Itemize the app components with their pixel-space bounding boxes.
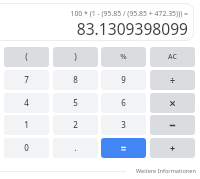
button[interactable]: 2 <box>53 115 98 135</box>
staticText: % <box>120 51 127 61</box>
staticText: 0 <box>24 142 29 153</box>
button[interactable]: 4 <box>4 93 49 113</box>
button[interactable]: 7 <box>4 70 49 90</box>
button[interactable]: 1 <box>4 115 49 135</box>
staticText: AC <box>168 52 177 61</box>
button[interactable]: Multiply <box>150 93 195 113</box>
staticText: 3 <box>121 119 126 130</box>
button[interactable]: 6 <box>101 93 146 113</box>
staticText: 5 <box>73 97 78 108</box>
button[interactable]: Minus <box>150 115 195 135</box>
staticText: ) <box>74 51 77 62</box>
staticText: . <box>74 142 77 153</box>
button[interactable]: 5 <box>53 93 98 113</box>
button[interactable]: AC <box>150 47 195 67</box>
button[interactable]: 3 <box>101 115 146 135</box>
staticText: 9 <box>121 74 126 85</box>
button[interactable]: Close parenthesis <box>53 47 98 67</box>
staticText: 7 <box>24 74 29 85</box>
staticText: Weitere Informationen <box>136 167 196 175</box>
staticText: 6 <box>121 97 126 108</box>
staticText: ( <box>25 51 28 62</box>
staticText: 2 <box>73 119 78 130</box>
button[interactable]: 0 <box>4 138 49 158</box>
button[interactable]: Equals <box>101 138 146 158</box>
button[interactable]: 8 <box>53 70 98 90</box>
staticText: 8 <box>73 74 78 85</box>
staticText: 100 * (1 - (95.85 / (95.85 + 472.35))) = <box>70 9 188 18</box>
button[interactable]: Weitere Informationen <box>136 167 196 175</box>
staticText: 83.1309398099 <box>76 18 188 39</box>
button[interactable]: Decimal point <box>53 138 98 158</box>
button[interactable]: Plus <box>150 138 195 158</box>
staticText: 4 <box>24 97 29 108</box>
button[interactable]: Divide <box>150 70 195 90</box>
button[interactable]: 9 <box>101 70 146 90</box>
button[interactable]: Percent <box>101 47 146 67</box>
button[interactable]: Open parenthesis <box>4 47 49 67</box>
staticText: 1 <box>24 119 29 130</box>
